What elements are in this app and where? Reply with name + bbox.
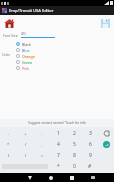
- staticText: 4: [57, 141, 60, 148]
- button[interactable]: Orange: [16, 53, 35, 59]
- staticText: Suggest contact names? Touch for info: [28, 121, 86, 125]
- staticText: 7: [57, 152, 60, 159]
- staticText: ,: [41, 142, 43, 147]
- button[interactable]: =: [34, 150, 50, 161]
- button[interactable]: Black: [16, 41, 31, 47]
- staticText: +: [24, 131, 27, 136]
- button[interactable]: Delete: [98, 128, 114, 139]
- staticText: ): [25, 153, 27, 158]
- staticText: #: [88, 163, 92, 170]
- staticText: Black: [22, 42, 31, 47]
- button[interactable]: 4: [50, 139, 66, 150]
- staticText: Orange: [22, 54, 35, 59]
- staticText: 1: [57, 130, 60, 137]
- button[interactable]: 5: [66, 139, 82, 150]
- button[interactable]: Green: [16, 59, 33, 65]
- button[interactable]: Save: [100, 18, 111, 29]
- staticText: Pink: [22, 66, 30, 71]
- button[interactable]: /: [17, 139, 34, 150]
- button[interactable]: 3: [82, 128, 98, 139]
- button[interactable]: 8: [66, 150, 82, 161]
- button[interactable]: (: [0, 150, 17, 161]
- staticText: *: [7, 142, 10, 147]
- staticText: (: [8, 153, 10, 158]
- button[interactable]: #: [82, 161, 98, 172]
- button[interactable]: 1: [50, 128, 66, 139]
- button[interactable]: Enter: [98, 139, 114, 150]
- button[interactable]: Back: [19, 173, 40, 182]
- staticText: -: [8, 131, 10, 136]
- button[interactable]: 7: [50, 150, 66, 161]
- staticText: Emp/Transit USA Editor: [9, 8, 54, 13]
- staticText: 20: [21, 31, 26, 36]
- staticText: =: [41, 153, 44, 158]
- button[interactable]: ): [17, 150, 34, 161]
- button[interactable]: Blue: [16, 47, 30, 53]
- button[interactable]: +: [17, 128, 34, 139]
- staticText: 6: [89, 141, 92, 148]
- staticText: Font Size: [3, 33, 18, 38]
- button[interactable]: 6: [82, 139, 98, 150]
- button[interactable]: Home: [40, 173, 61, 182]
- button[interactable]: 9: [82, 150, 98, 161]
- staticText: 3: [89, 130, 92, 137]
- staticText: 5: [73, 141, 76, 148]
- staticText: Blue: [22, 48, 30, 53]
- staticText: .: [41, 131, 43, 136]
- button[interactable]: ,: [34, 139, 50, 150]
- button[interactable]: Pink: [16, 65, 30, 71]
- staticText: 0: [73, 163, 76, 170]
- button[interactable]: Home: [3, 17, 15, 29]
- button[interactable]: Recents: [61, 173, 82, 182]
- staticText: 9: [89, 152, 92, 159]
- button[interactable]: *: [50, 161, 66, 172]
- staticText: Green: [22, 60, 33, 65]
- button[interactable]: 2: [66, 128, 82, 139]
- button[interactable]: Keyboard: [82, 173, 103, 182]
- staticText: *: [57, 163, 60, 170]
- button[interactable]: App icon: [2, 8, 7, 13]
- staticText: Color: [2, 53, 11, 57]
- button[interactable]: *: [0, 139, 17, 150]
- staticText: /: [25, 142, 27, 147]
- staticText: 8: [73, 152, 76, 159]
- button[interactable]: 0: [66, 161, 82, 172]
- staticText: 2: [73, 130, 76, 137]
